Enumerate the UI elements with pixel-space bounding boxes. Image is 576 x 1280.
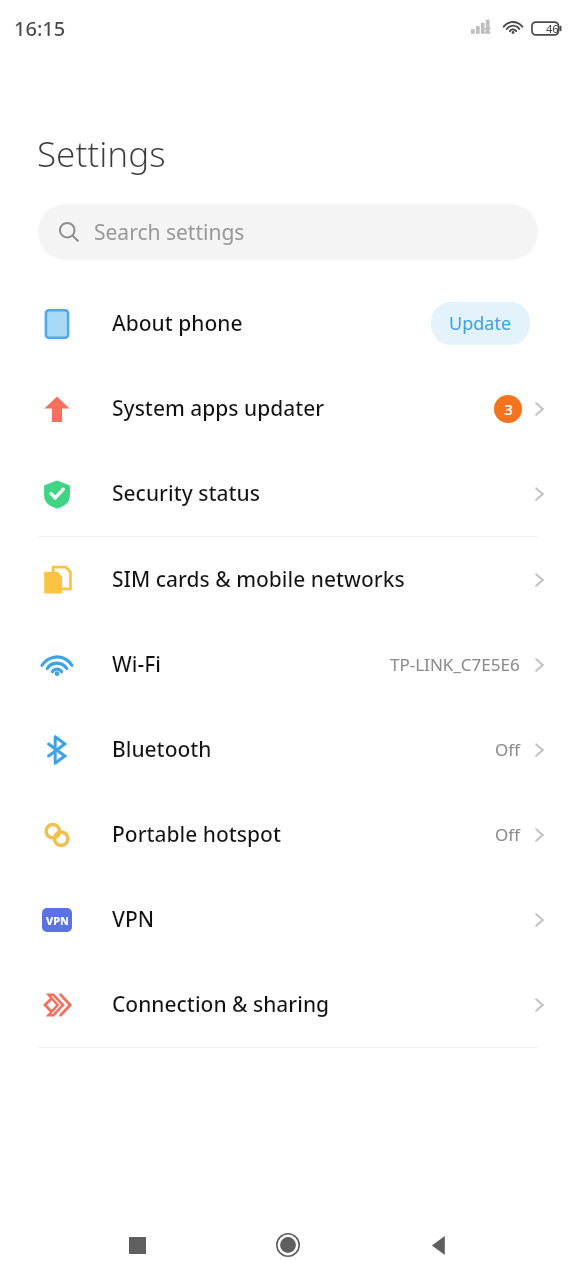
staticText: 46 (546, 21, 559, 36)
button[interactable]: Wi-Fi (0, 622, 576, 707)
button[interactable]: System apps updater (0, 366, 576, 451)
staticText: Off (495, 823, 520, 846)
staticText: Portable hotspot (112, 820, 281, 849)
button[interactable]: Portable hotspot (0, 792, 576, 877)
button[interactable]: Search settings (38, 204, 538, 260)
staticText: SIM cards & mobile networks (112, 565, 405, 594)
staticText: Security status (112, 479, 260, 508)
staticText: Update (449, 311, 512, 336)
staticText: Off (495, 738, 520, 761)
button[interactable]: SIM cards & mobile networks (0, 537, 576, 622)
button[interactable]: VPN (0, 877, 576, 962)
button[interactable]: Security status (0, 451, 576, 536)
staticText: VPN (112, 905, 155, 934)
staticText: Search settings (94, 218, 245, 247)
button[interactable]: Connection & sharing (0, 962, 576, 1047)
staticText: Connection & sharing (112, 990, 330, 1019)
staticText: 16:15 (14, 15, 66, 42)
staticText: 3 (504, 399, 513, 419)
staticText: Settings (37, 130, 166, 178)
button[interactable]: Recents (110, 1218, 164, 1272)
button[interactable]: Back (412, 1218, 466, 1272)
staticText: Bluetooth (112, 735, 212, 764)
staticText: VPN (46, 913, 69, 928)
button[interactable]: Home (261, 1218, 315, 1272)
staticText: Wi-Fi (112, 650, 161, 679)
staticText: System apps updater (112, 394, 325, 423)
staticText: About phone (112, 309, 243, 338)
button[interactable]: About phone (0, 281, 576, 366)
staticText: TP-LINK_C7E5E6 (390, 653, 520, 676)
button[interactable]: Bluetooth (0, 707, 576, 792)
button[interactable]: Update (431, 302, 530, 345)
